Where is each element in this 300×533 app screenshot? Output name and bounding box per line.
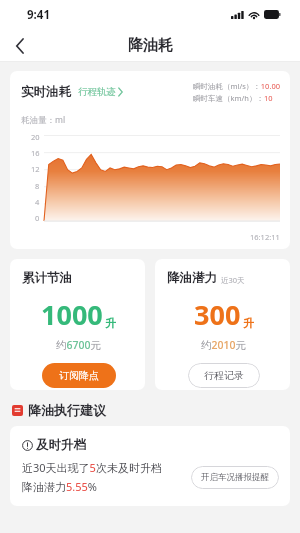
staticText: 行程轨迹 xyxy=(78,86,116,98)
staticText: 1000 xyxy=(41,296,103,333)
staticText: 订阅降点 xyxy=(59,369,99,382)
staticText: 12 xyxy=(31,164,40,174)
staticText: 4 xyxy=(35,197,40,207)
staticText: 20 xyxy=(31,132,40,142)
staticText: 耗油量：ml xyxy=(21,114,66,126)
staticText: 近30天出现了5次未及时升档 xyxy=(22,460,162,475)
staticText: 瞬时车速（km/h）：10 xyxy=(193,93,273,103)
button[interactable]: 行程记录 xyxy=(188,363,260,388)
staticText: 及时升档 xyxy=(36,437,86,453)
staticText: 约2010元 xyxy=(201,338,247,352)
staticText: 降油执行建议 xyxy=(28,402,106,418)
staticText: 升 xyxy=(243,316,254,330)
button[interactable]: 订阅降点 xyxy=(42,363,116,388)
staticText: 8 xyxy=(35,181,40,191)
staticText: 降油潜力 xyxy=(167,270,217,286)
staticText: 0 xyxy=(35,213,40,223)
staticText: 升 xyxy=(105,316,116,330)
staticText: 降油潜力5.55% xyxy=(22,479,97,494)
staticText: 近30天 xyxy=(221,275,245,285)
staticText: 约6700元 xyxy=(56,338,102,352)
button[interactable]: 行程轨迹 xyxy=(78,86,123,98)
staticText: 实时油耗 xyxy=(21,84,71,100)
staticText: 降油耗 xyxy=(128,36,173,55)
staticText: 累计节油 xyxy=(22,270,72,286)
button[interactable]: 开启车况播报提醒 xyxy=(191,466,279,489)
staticText: 16 xyxy=(31,148,40,158)
staticText: 9:41 xyxy=(27,7,50,23)
staticText: 300 xyxy=(194,296,241,333)
staticText: 开启车况播报提醒 xyxy=(201,472,269,483)
staticText: 瞬时油耗（ml/s）：10.00 xyxy=(193,81,280,91)
staticText: 行程记录 xyxy=(204,369,244,382)
button[interactable]: Back xyxy=(0,29,40,62)
staticText: 16:12:11 xyxy=(250,232,280,242)
